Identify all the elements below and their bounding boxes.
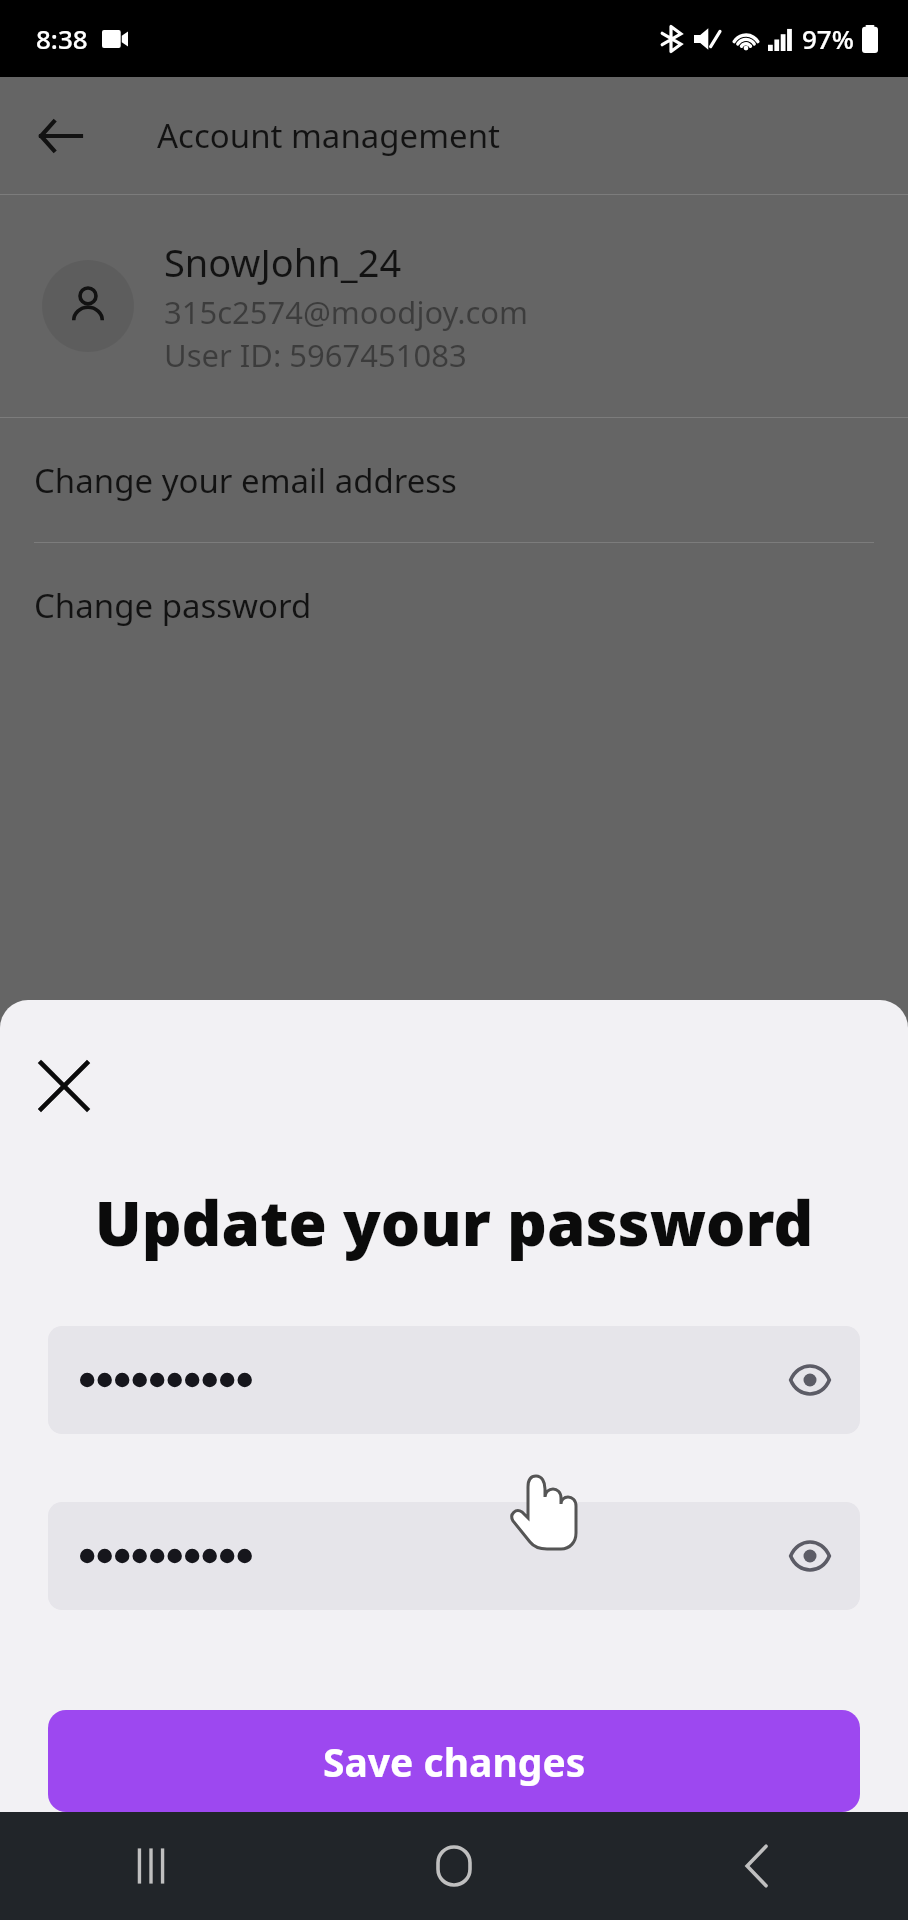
button[interactable]: Show password	[48, 1326, 860, 1434]
button[interactable]: Change your email address	[0, 418, 908, 542]
staticText: Change your email address	[34, 458, 457, 503]
button[interactable]: Back	[605, 1812, 908, 1920]
button[interactable]: Show password	[778, 1524, 842, 1588]
button[interactable]: SnowJohn_24	[0, 195, 908, 417]
button[interactable]: Change password	[0, 543, 908, 667]
staticText: Change password	[34, 583, 312, 628]
button[interactable]: Close	[26, 1048, 102, 1124]
staticText: Update your password	[40, 1180, 868, 1264]
staticText: Save changes	[323, 1735, 586, 1788]
staticText: 8:38	[36, 21, 88, 56]
staticText: 97%	[802, 21, 854, 56]
button[interactable]: Show password	[778, 1348, 842, 1412]
button[interactable]: Save changes	[48, 1710, 860, 1812]
button[interactable]: Back	[26, 101, 96, 171]
staticText: SnowJohn_24	[164, 236, 402, 288]
button[interactable]: Show password	[48, 1502, 860, 1610]
button[interactable]: Home	[302, 1812, 605, 1920]
staticText: Account management	[157, 113, 500, 158]
staticText: 315c2574@moodjoy.com	[164, 291, 529, 333]
staticText: User ID: 5967451083	[164, 334, 467, 376]
button[interactable]: Recent apps	[0, 1812, 302, 1920]
